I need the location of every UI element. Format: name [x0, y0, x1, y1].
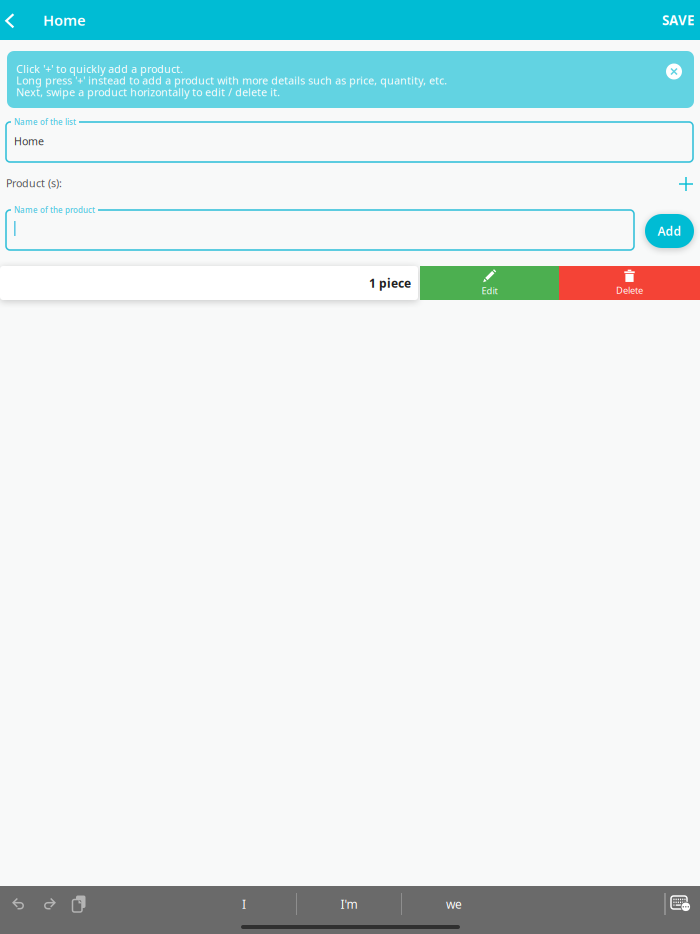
button[interactable]: Add [645, 214, 694, 248]
staticText: Long press '+' instead to add a product … [16, 73, 447, 87]
button[interactable]: Dismiss [661, 58, 687, 84]
button[interactable]: SAVE [642, 0, 700, 40]
staticText: Edit [481, 285, 497, 297]
button[interactable]: I [192, 892, 296, 916]
button[interactable]: I'm [297, 892, 401, 916]
button[interactable]: Keyboard [671, 896, 691, 912]
button[interactable]: Add product [671, 171, 700, 197]
staticText: Click '+' to quickly add a product. [16, 62, 183, 76]
button[interactable]: Redo [42, 896, 56, 912]
staticText: Name of the product [14, 205, 95, 215]
button[interactable]: Edit [420, 266, 559, 300]
staticText: we [446, 896, 462, 912]
staticText: Name of the list [14, 117, 76, 127]
button[interactable]: we [402, 892, 506, 916]
staticText: Next, swipe a product horizontally to ed… [16, 85, 280, 99]
button[interactable]: Back [0, 1, 25, 41]
button[interactable]: Paste [72, 895, 86, 913]
staticText: I [242, 896, 246, 912]
staticText: I'm [340, 896, 357, 912]
staticText: Product (s): [6, 176, 62, 190]
button[interactable]: Undo [12, 896, 26, 912]
staticText: 1 piece [369, 275, 411, 291]
staticText: Delete [616, 284, 643, 296]
staticText: Home [14, 134, 44, 148]
staticText: Add [657, 223, 681, 239]
button[interactable]: Delete [559, 266, 700, 300]
staticText: Home [43, 10, 86, 30]
staticText: SAVE [662, 11, 694, 29]
